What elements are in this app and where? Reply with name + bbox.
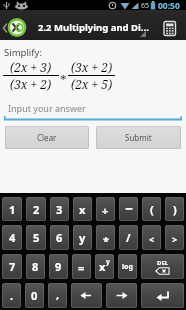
staticText: y — [106, 257, 110, 266]
button[interactable] — [71, 283, 102, 308]
staticText: (2x + 5) — [71, 76, 113, 92]
staticText: 5 — [33, 230, 40, 245]
staticText: y — [79, 230, 86, 245]
staticText: = — [78, 260, 85, 275]
staticText: 1 — [9, 202, 16, 217]
button[interactable]: , — [48, 283, 67, 308]
button[interactable] — [141, 283, 184, 308]
staticText: 3 — [56, 202, 63, 217]
button[interactable]: . — [2, 283, 21, 308]
button[interactable]: > — [165, 225, 184, 250]
staticText: x — [79, 202, 86, 217]
button[interactable]: DEL — [141, 254, 184, 279]
button[interactable] — [119, 197, 138, 221]
staticText: / — [126, 230, 131, 245]
staticText: 2 — [33, 202, 40, 217]
button[interactable]: / — [119, 225, 138, 250]
button[interactable]: x — [73, 197, 92, 221]
button[interactable]: 5 — [26, 225, 46, 250]
staticText: 4 — [9, 230, 16, 245]
staticText: * — [60, 71, 67, 89]
staticText: 2.2 Multiplying and Di… — [38, 21, 149, 34]
staticText: x — [99, 259, 106, 274]
staticText: > — [172, 233, 178, 245]
button[interactable]: ( — [142, 197, 161, 221]
button[interactable]: 4 — [2, 225, 22, 250]
button[interactable]: 0 — [25, 283, 44, 308]
staticText: (3x + 2) — [10, 76, 52, 92]
staticText: ) — [173, 202, 177, 217]
staticText: . — [10, 288, 14, 303]
staticText: log — [122, 262, 133, 272]
button[interactable]: 2 — [26, 197, 46, 221]
button[interactable]: 7 — [2, 254, 22, 279]
button[interactable]: y — [73, 225, 92, 250]
button[interactable]: 1 — [2, 197, 22, 221]
staticText: Input your answer — [8, 102, 86, 114]
button[interactable] — [163, 20, 177, 37]
button[interactable]: Submit — [96, 126, 181, 149]
staticText: + — [102, 203, 109, 218]
button[interactable]: = — [72, 254, 91, 279]
staticText: Clear — [37, 132, 57, 143]
button[interactable]: + — [96, 197, 115, 221]
staticText: Simplify: — [4, 46, 42, 59]
staticText: , — [56, 287, 60, 302]
staticText: 8 — [32, 259, 39, 274]
button[interactable]: Clear — [5, 126, 89, 149]
button[interactable]: x — [95, 254, 114, 279]
button[interactable]: 2.2 Multiplying and Di… — [0, 10, 186, 40]
button[interactable]: * — [96, 225, 115, 250]
button[interactable]: 8 — [26, 254, 45, 279]
button[interactable]: 3 — [50, 197, 69, 221]
button[interactable]: 6 — [50, 225, 69, 250]
button[interactable]: Input your answer — [0, 102, 186, 121]
staticText: * — [103, 233, 109, 248]
staticText: DEL — [157, 259, 169, 267]
button[interactable]: ) — [165, 197, 184, 221]
staticText: ( — [150, 202, 154, 217]
staticText: < — [149, 233, 155, 245]
button[interactable]: log — [118, 254, 137, 279]
staticText: 00:50 — [158, 0, 180, 10]
staticText: 7 — [9, 259, 16, 274]
staticText: Submit — [125, 132, 152, 143]
staticText: 0 — [31, 288, 38, 303]
button[interactable]: < — [142, 225, 161, 250]
staticText: 9 — [55, 259, 62, 274]
button[interactable] — [106, 283, 137, 308]
staticText: 6 — [56, 230, 63, 245]
staticText: (2x + 3) — [10, 59, 52, 75]
staticText: 65 — [141, 1, 150, 11]
staticText: (3x + 2) — [71, 59, 113, 75]
button[interactable]: 9 — [49, 254, 68, 279]
